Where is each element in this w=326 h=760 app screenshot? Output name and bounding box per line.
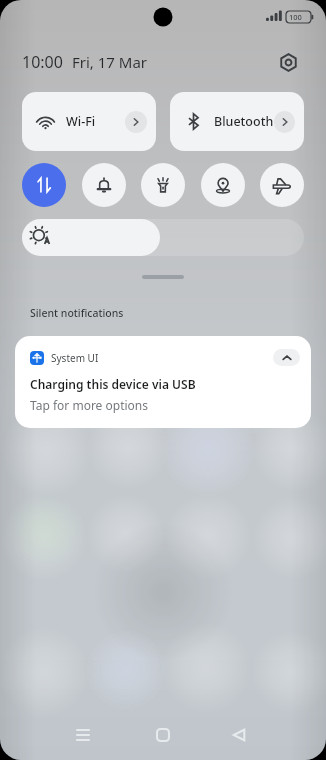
staticText: 10:00 bbox=[22, 51, 63, 73]
staticText: Fri, 17 Mar bbox=[72, 52, 148, 72]
staticText: Silent notifications bbox=[30, 306, 124, 320]
button[interactable]: Brightness bbox=[22, 219, 304, 256]
button[interactable]: Mobile data bbox=[22, 163, 66, 207]
button[interactable]: System UI bbox=[15, 336, 311, 428]
staticText: System UI bbox=[51, 351, 99, 365]
button[interactable]: Collapse bbox=[273, 349, 300, 366]
button[interactable]: Airplane mode bbox=[260, 163, 304, 207]
button[interactable]: Recents bbox=[65, 717, 101, 753]
button[interactable]: Do not disturb bbox=[82, 163, 126, 207]
button[interactable]: Home bbox=[145, 717, 181, 753]
staticText: Tap for more options bbox=[30, 397, 148, 413]
button[interactable]: Location bbox=[201, 163, 245, 207]
button[interactable]: Wi-Fi bbox=[22, 92, 156, 151]
button[interactable]: Bluetooth bbox=[170, 92, 304, 151]
button[interactable]: Settings bbox=[273, 47, 303, 77]
button[interactable]: Back bbox=[221, 717, 257, 753]
staticText: 100 bbox=[289, 12, 302, 22]
staticText: Wi-Fi bbox=[66, 113, 96, 130]
button[interactable]: Flashlight bbox=[141, 163, 185, 207]
staticText: Bluetooth bbox=[214, 113, 274, 130]
staticText: Charging this device via USB bbox=[30, 376, 196, 392]
